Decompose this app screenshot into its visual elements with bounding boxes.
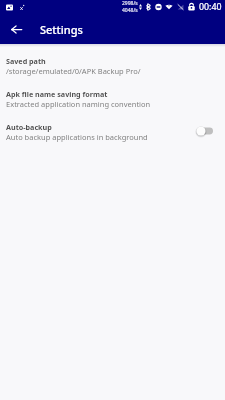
staticText: 2998/s: [122, 0, 138, 7]
staticText: Saved path: [6, 56, 46, 66]
staticText: Auto backup applications in background: [6, 132, 148, 142]
staticText: /storage/emulated/0/APK Backup Pro/: [6, 66, 141, 76]
staticText: Apk file name saving format: [6, 89, 108, 99]
staticText: Auto-backup: [6, 122, 52, 132]
button[interactable]: Auto-backup toggle: [195, 124, 214, 138]
button[interactable]: Saved path: [0, 55, 225, 81]
staticText: Extracted application naming convention: [6, 99, 151, 109]
button[interactable]: Back: [4, 17, 29, 42]
staticText: Settings: [40, 22, 83, 37]
staticText: 4048/s: [122, 7, 138, 14]
staticText: 00:40: [199, 1, 222, 13]
button[interactable]: Auto-backup: [0, 121, 225, 147]
button[interactable]: Apk file name saving format: [0, 88, 225, 114]
